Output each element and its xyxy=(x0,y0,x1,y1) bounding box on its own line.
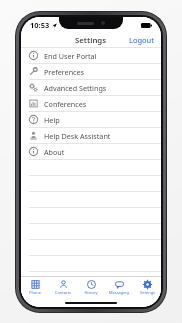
staticText: End User Portal xyxy=(44,51,97,61)
staticText: Phone xyxy=(29,290,41,295)
button[interactable]: Help Desk Assistant xyxy=(21,128,161,143)
staticText: Settings xyxy=(140,290,155,295)
button[interactable]: End User Portal xyxy=(21,48,161,63)
button[interactable]: Help xyxy=(21,112,161,127)
staticText: Logout xyxy=(129,35,154,45)
button[interactable]: Settings xyxy=(133,280,161,295)
staticText: Help Desk Assistant xyxy=(44,131,111,141)
button[interactable]: Conferences xyxy=(21,96,161,111)
button[interactable]: History xyxy=(77,280,105,295)
button[interactable]: Logout xyxy=(122,33,161,47)
staticText: Settings xyxy=(75,35,107,46)
button[interactable]: About xyxy=(21,144,161,159)
button[interactable]: Phone xyxy=(21,280,49,295)
staticText: History xyxy=(84,290,98,295)
staticText: About xyxy=(44,147,65,157)
button[interactable]: Preferences xyxy=(21,64,161,79)
staticText: 10:53 xyxy=(30,20,50,30)
staticText: Contacts xyxy=(55,290,71,295)
staticText: Preferences xyxy=(44,67,85,77)
staticText: Advanced Settings xyxy=(44,83,107,93)
staticText: Help xyxy=(44,115,60,125)
staticText: Conferences xyxy=(44,99,87,109)
staticText: Messaging xyxy=(109,290,129,295)
button[interactable]: Advanced Settings xyxy=(21,80,161,95)
button[interactable]: Contacts xyxy=(49,280,77,295)
button[interactable]: Messaging xyxy=(105,280,133,295)
